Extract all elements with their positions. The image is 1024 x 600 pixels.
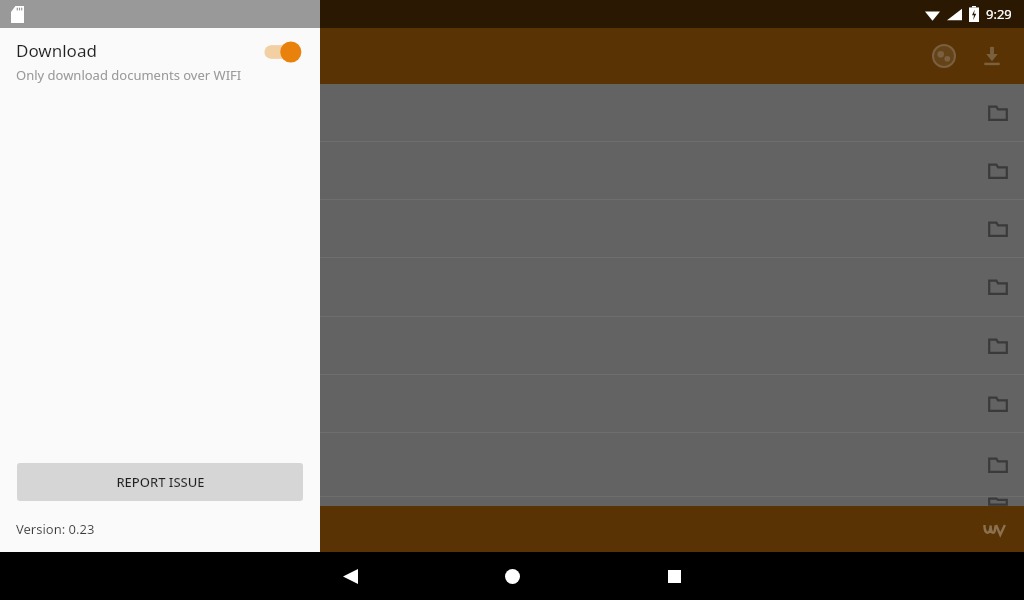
button[interactable]: REPORT ISSUE: [17, 463, 303, 501]
button[interactable]: [0, 497, 1024, 506]
button[interactable]: [0, 258, 1024, 316]
button[interactable]: Download: [0, 28, 320, 94]
staticText: Version: 0.23: [16, 520, 95, 538]
button[interactable]: [0, 84, 1024, 141]
button[interactable]: Download: [968, 32, 1016, 80]
button[interactable]: Back: [326, 552, 374, 600]
button[interactable]: Recents: [650, 552, 698, 600]
button[interactable]: [0, 375, 1024, 432]
button[interactable]: Home: [488, 552, 536, 600]
staticText: Only download documents over WIFI: [16, 66, 242, 84]
staticText: Download: [16, 39, 97, 62]
staticText: 9:29: [986, 5, 1012, 23]
staticText: REPORT ISSUE: [116, 473, 205, 491]
button[interactable]: [0, 433, 1024, 496]
button[interactable]: [0, 200, 1024, 257]
button[interactable]: [0, 317, 1024, 374]
button[interactable]: [0, 142, 1024, 199]
button[interactable]: Language: [920, 32, 968, 80]
